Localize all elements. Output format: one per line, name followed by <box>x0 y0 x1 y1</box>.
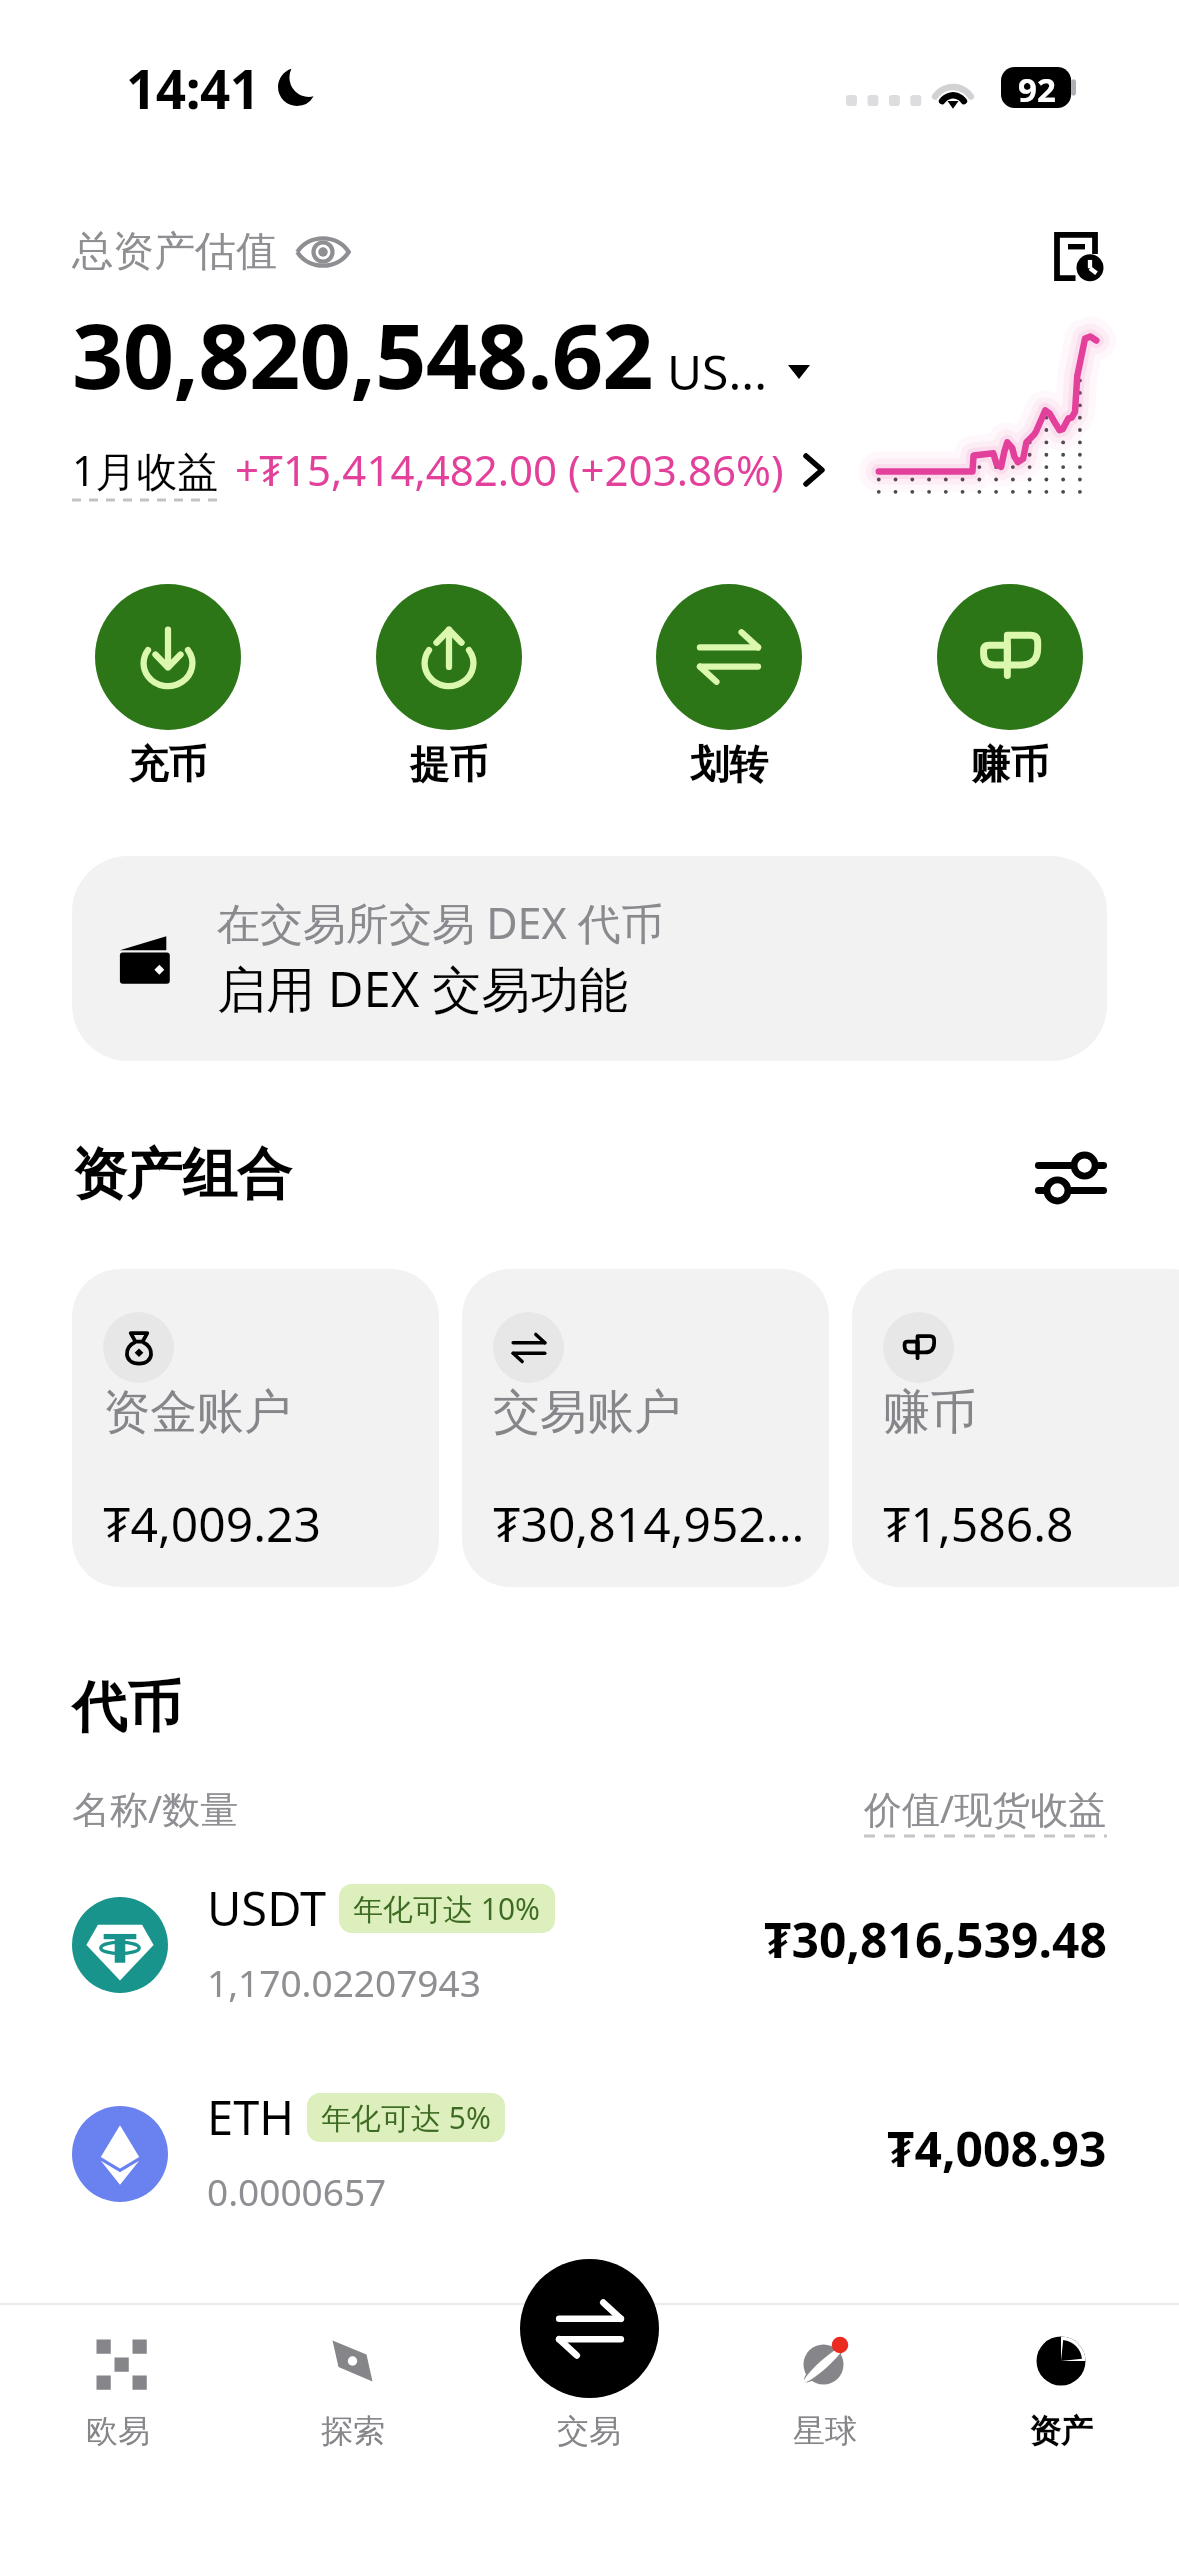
staticText: ₮30,816,539.48 <box>764 1907 1107 1972</box>
staticText: 0.0000657 <box>207 2166 387 2216</box>
staticText: 启用 DEX 交易功能 <box>217 955 629 1022</box>
staticText: 资金账户 <box>103 1383 291 1442</box>
staticText: 探索 <box>321 2411 385 2451</box>
button[interactable]: 价值/现货收益 <box>864 1782 1107 1834</box>
button[interactable]: 赚币 <box>937 584 1083 789</box>
button[interactable]: 星球 <box>707 2303 943 2451</box>
staticText: 总资产估值 <box>72 226 277 278</box>
button[interactable]: 交易 <box>471 2303 707 2451</box>
staticText: 提币 <box>410 740 488 789</box>
button[interactable]: US... <box>667 339 810 404</box>
button[interactable]: 交易账户 <box>462 1269 829 1587</box>
staticText: 赚币 <box>883 1383 977 1442</box>
staticText: USDT <box>207 1876 327 1940</box>
button[interactable]: USDT <box>0 1897 1179 1993</box>
button[interactable]: ETH <box>0 2106 1179 2202</box>
button[interactable]: 划转 <box>656 584 802 789</box>
staticText: ₮4,008.93 <box>887 2116 1107 2181</box>
staticText: 欧易 <box>86 2411 150 2451</box>
button[interactable]: Trade <box>520 2259 659 2398</box>
staticText: 划转 <box>690 740 768 789</box>
button[interactable]: Transaction history <box>1040 220 1118 292</box>
staticText: 资产组合 <box>72 1140 292 1209</box>
staticText: 代币 <box>72 1673 182 1742</box>
button[interactable]: 提币 <box>376 584 522 789</box>
staticText: ETH <box>207 2085 295 2149</box>
staticText: 赚币 <box>971 740 1049 789</box>
staticText: 30,820,548.62 <box>72 293 653 416</box>
button[interactable]: 1月收益 <box>72 441 825 498</box>
staticText: 交易 <box>557 2411 621 2451</box>
staticText: 在交易所交易 DEX 代币 <box>217 893 664 952</box>
staticText: 14:41 <box>126 52 260 124</box>
staticText: ₮30,814,952... <box>493 1491 805 1556</box>
button[interactable]: 资金账户 <box>72 1269 439 1587</box>
staticText: 星球 <box>793 2411 857 2451</box>
staticText: ₮4,009.23 <box>103 1491 321 1556</box>
staticText: 1月收益 <box>72 442 219 498</box>
staticText: 年化可达 5% <box>321 2097 491 2138</box>
staticText: 资产 <box>1029 2411 1093 2451</box>
button[interactable]: Toggle balance visibility <box>295 224 351 280</box>
button[interactable]: 资产 <box>943 2303 1179 2451</box>
staticText: 交易账户 <box>493 1383 681 1442</box>
staticText: 充币 <box>129 740 207 789</box>
staticText: 1,170.02207943 <box>207 1957 481 2007</box>
staticText: ₮1,586.8 <box>883 1491 1074 1556</box>
button[interactable]: Filter <box>1024 1140 1118 1216</box>
staticText: 年化可达 10% <box>353 1888 541 1929</box>
staticText: US... <box>667 339 768 404</box>
staticText: 92 <box>1018 67 1056 108</box>
staticText: +₮15,414,482.00 (+203.86%) <box>235 441 784 498</box>
button[interactable]: 赚币 <box>852 1269 1179 1587</box>
button[interactable]: 探索 <box>235 2303 471 2451</box>
button[interactable]: 在交易所交易 DEX 代币 <box>72 856 1107 1061</box>
button[interactable]: 欧易 <box>0 2303 235 2451</box>
button[interactable]: 充币 <box>95 584 241 789</box>
staticText: 名称/数量 <box>72 1782 239 1834</box>
